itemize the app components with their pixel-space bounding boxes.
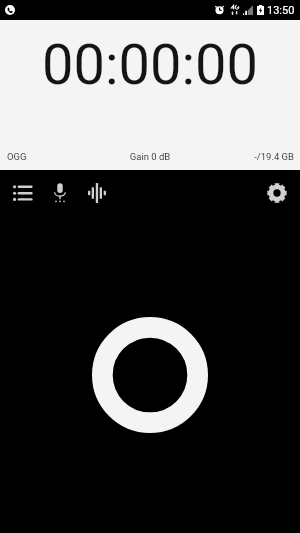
button[interactable]: Recordings list bbox=[1, 170, 46, 216]
staticText: 13:50 bbox=[267, 4, 295, 17]
button[interactable]: Audio waveform bbox=[82, 170, 118, 216]
button[interactable]: Ongoing call bbox=[0, 0, 19, 20]
button[interactable]: Microphone source bbox=[46, 170, 82, 216]
button[interactable]: Settings bbox=[255, 170, 300, 216]
staticText: OGG bbox=[7, 151, 102, 162]
staticText: -/19.4 GB bbox=[198, 151, 294, 162]
staticText: Gain 0 dB bbox=[102, 151, 198, 162]
button[interactable]: Record bbox=[92, 317, 208, 433]
staticText: 00:00:00 bbox=[0, 32, 300, 98]
